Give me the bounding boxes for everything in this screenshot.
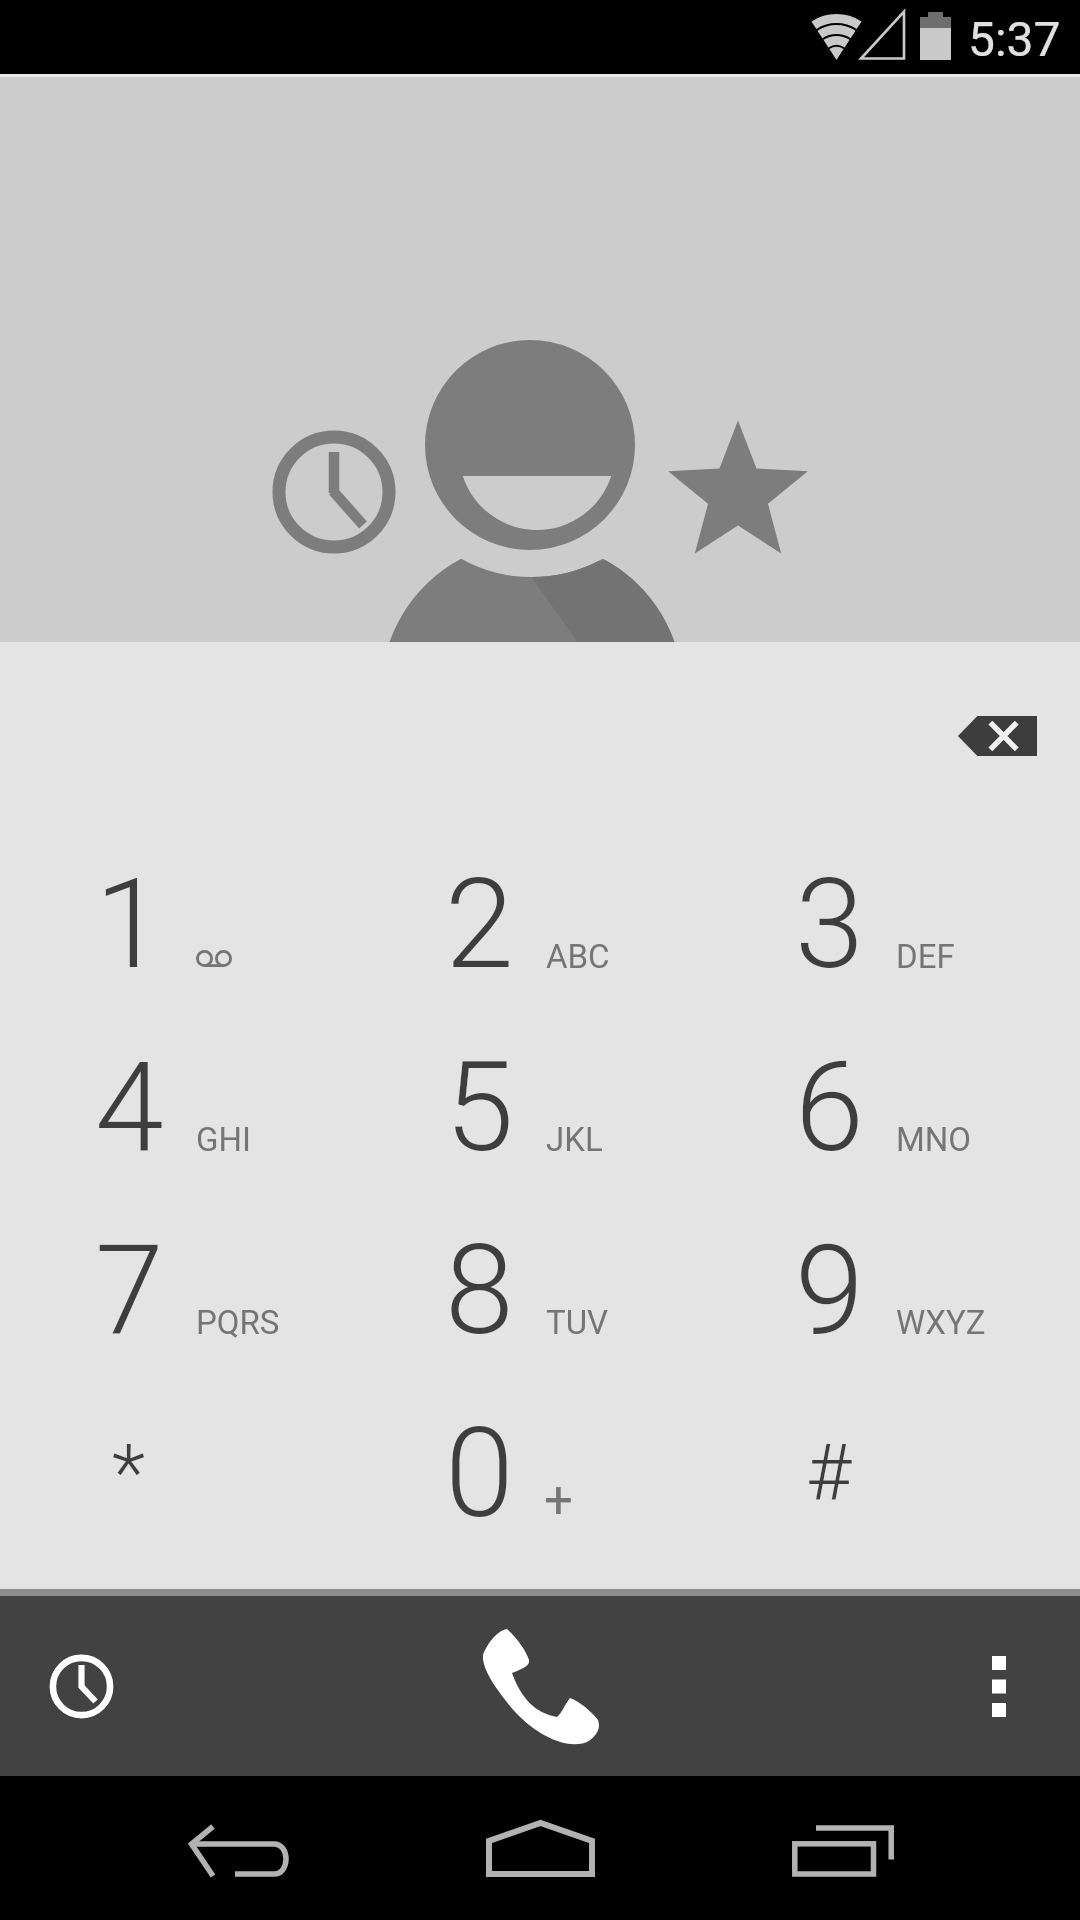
button[interactable]: 2 <box>365 829 715 1012</box>
staticText: GHI <box>196 1120 251 1159</box>
button[interactable]: Delete <box>906 673 1080 799</box>
button[interactable]: 0 <box>365 1378 715 1561</box>
staticText: 5:37 <box>968 11 1061 67</box>
button[interactable]: 9 <box>715 1195 1065 1378</box>
staticText: 0 <box>445 1401 514 1546</box>
staticText: DEF <box>896 937 955 976</box>
staticText: 2 <box>445 852 514 997</box>
button[interactable]: * <box>15 1378 365 1561</box>
button[interactable]: Back <box>89 1776 389 1920</box>
button[interactable]: 8 <box>365 1195 715 1378</box>
staticText: 1 <box>95 852 164 997</box>
button[interactable]: 1 <box>15 829 365 1012</box>
staticText: PQRS <box>196 1303 280 1342</box>
button[interactable]: More options <box>918 1596 1080 1776</box>
staticText: # <box>806 1428 852 1519</box>
button[interactable]: 6 <box>715 1012 1065 1195</box>
staticText: 7 <box>95 1218 164 1363</box>
staticText: + <box>544 1471 573 1531</box>
staticText: TUV <box>546 1303 609 1342</box>
staticText: 9 <box>795 1218 864 1363</box>
button[interactable]: Recents <box>693 1776 993 1920</box>
button[interactable]: 5 <box>365 1012 715 1195</box>
staticText: MNO <box>896 1120 972 1159</box>
button[interactable]: 7 <box>15 1195 365 1378</box>
staticText: 5 <box>445 1035 514 1180</box>
staticText: WXYZ <box>896 1303 986 1342</box>
button[interactable]: 3 <box>715 829 1065 1012</box>
button[interactable]: Dialpad <box>380 1596 700 1776</box>
staticText: * <box>112 1428 146 1519</box>
staticText: 3 <box>795 852 864 997</box>
button[interactable]: 4 <box>15 1012 365 1195</box>
staticText: JKL <box>546 1120 603 1159</box>
button[interactable]: Home <box>390 1776 690 1920</box>
button[interactable]: # <box>715 1378 1065 1561</box>
staticText: 4 <box>95 1035 164 1180</box>
staticText: 8 <box>445 1218 514 1363</box>
button[interactable]: Call history <box>0 1596 162 1776</box>
staticText: 6 <box>795 1035 864 1180</box>
staticText: ABC <box>546 937 610 976</box>
